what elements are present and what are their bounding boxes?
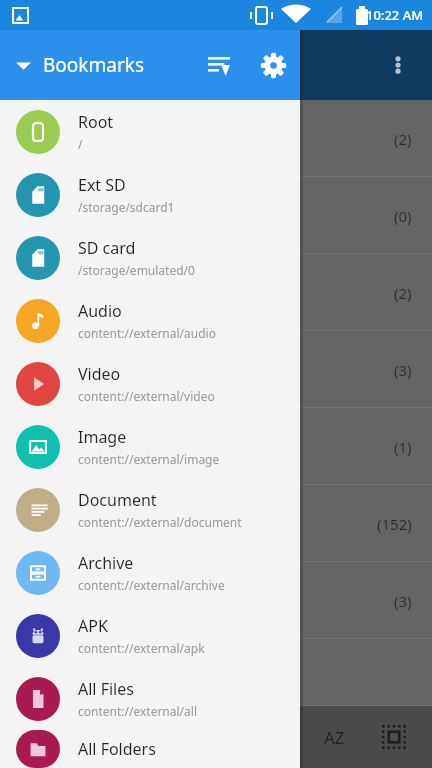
staticText: Root [78,111,114,133]
staticText: /storage/emulated/0 [78,262,195,278]
button[interactable]: Select all [368,711,420,763]
staticText: Document [78,489,157,511]
button[interactable]: Sort [192,38,246,92]
button[interactable]: SD card [0,226,300,289]
button[interactable]: More options [374,41,422,89]
staticText: content://external/archive [78,577,225,593]
staticText: All Folders [78,738,156,760]
staticText: (3) [394,360,412,380]
button[interactable]: Image [0,415,300,478]
staticText: Archive [78,552,134,574]
button[interactable]: Video [0,352,300,415]
button[interactable]: AZ [308,711,360,763]
staticText: content://external/apk [78,640,205,656]
button[interactable]: (1) [0,408,432,485]
button[interactable]: (3) [0,331,432,408]
staticText: content://external/image [78,451,220,467]
staticText: content://external/document [78,514,242,530]
button[interactable]: Document [0,478,300,541]
staticText: (1) [394,437,412,457]
staticText: / [78,136,83,152]
button[interactable]: Archive [0,541,300,604]
button[interactable]: (0) [0,177,432,254]
staticText: APK [78,615,108,637]
button[interactable]: (2) [0,100,432,177]
staticText: (2) [394,129,412,149]
staticText: AZ [324,726,345,749]
staticText: (0) [394,206,412,226]
button[interactable]: Bookmarks [0,30,192,100]
button[interactable]: (2) [0,254,432,331]
staticText: Bookmarks [43,52,145,78]
staticText: content://external/video [78,388,215,404]
staticText: Image [78,426,127,448]
button[interactable]: Ext SD [0,163,300,226]
staticText: /storage/sdcard1 [78,199,175,215]
button[interactable] [0,639,432,706]
staticText: All Files [78,678,134,700]
staticText: content://external/all [78,703,197,719]
staticText: (152) [377,514,412,534]
staticText: (3) [394,591,412,611]
staticText: Video [78,363,121,385]
staticText: Ext SD [78,174,126,196]
button[interactable]: Root [0,100,300,163]
staticText: content://external/audio [78,325,216,341]
button[interactable]: (3) [0,562,432,639]
button[interactable]: (152) [0,485,432,562]
button[interactable]: APK [0,604,300,667]
button[interactable]: Settings [246,38,300,92]
button[interactable]: Audio [0,289,300,352]
staticText: SD card [78,237,136,259]
staticText: Audio [78,300,122,322]
button[interactable]: All Files [0,667,300,730]
staticText: (2) [394,283,412,303]
staticText: 10:22 AM [366,6,424,24]
button[interactable]: All Folders [0,730,300,768]
